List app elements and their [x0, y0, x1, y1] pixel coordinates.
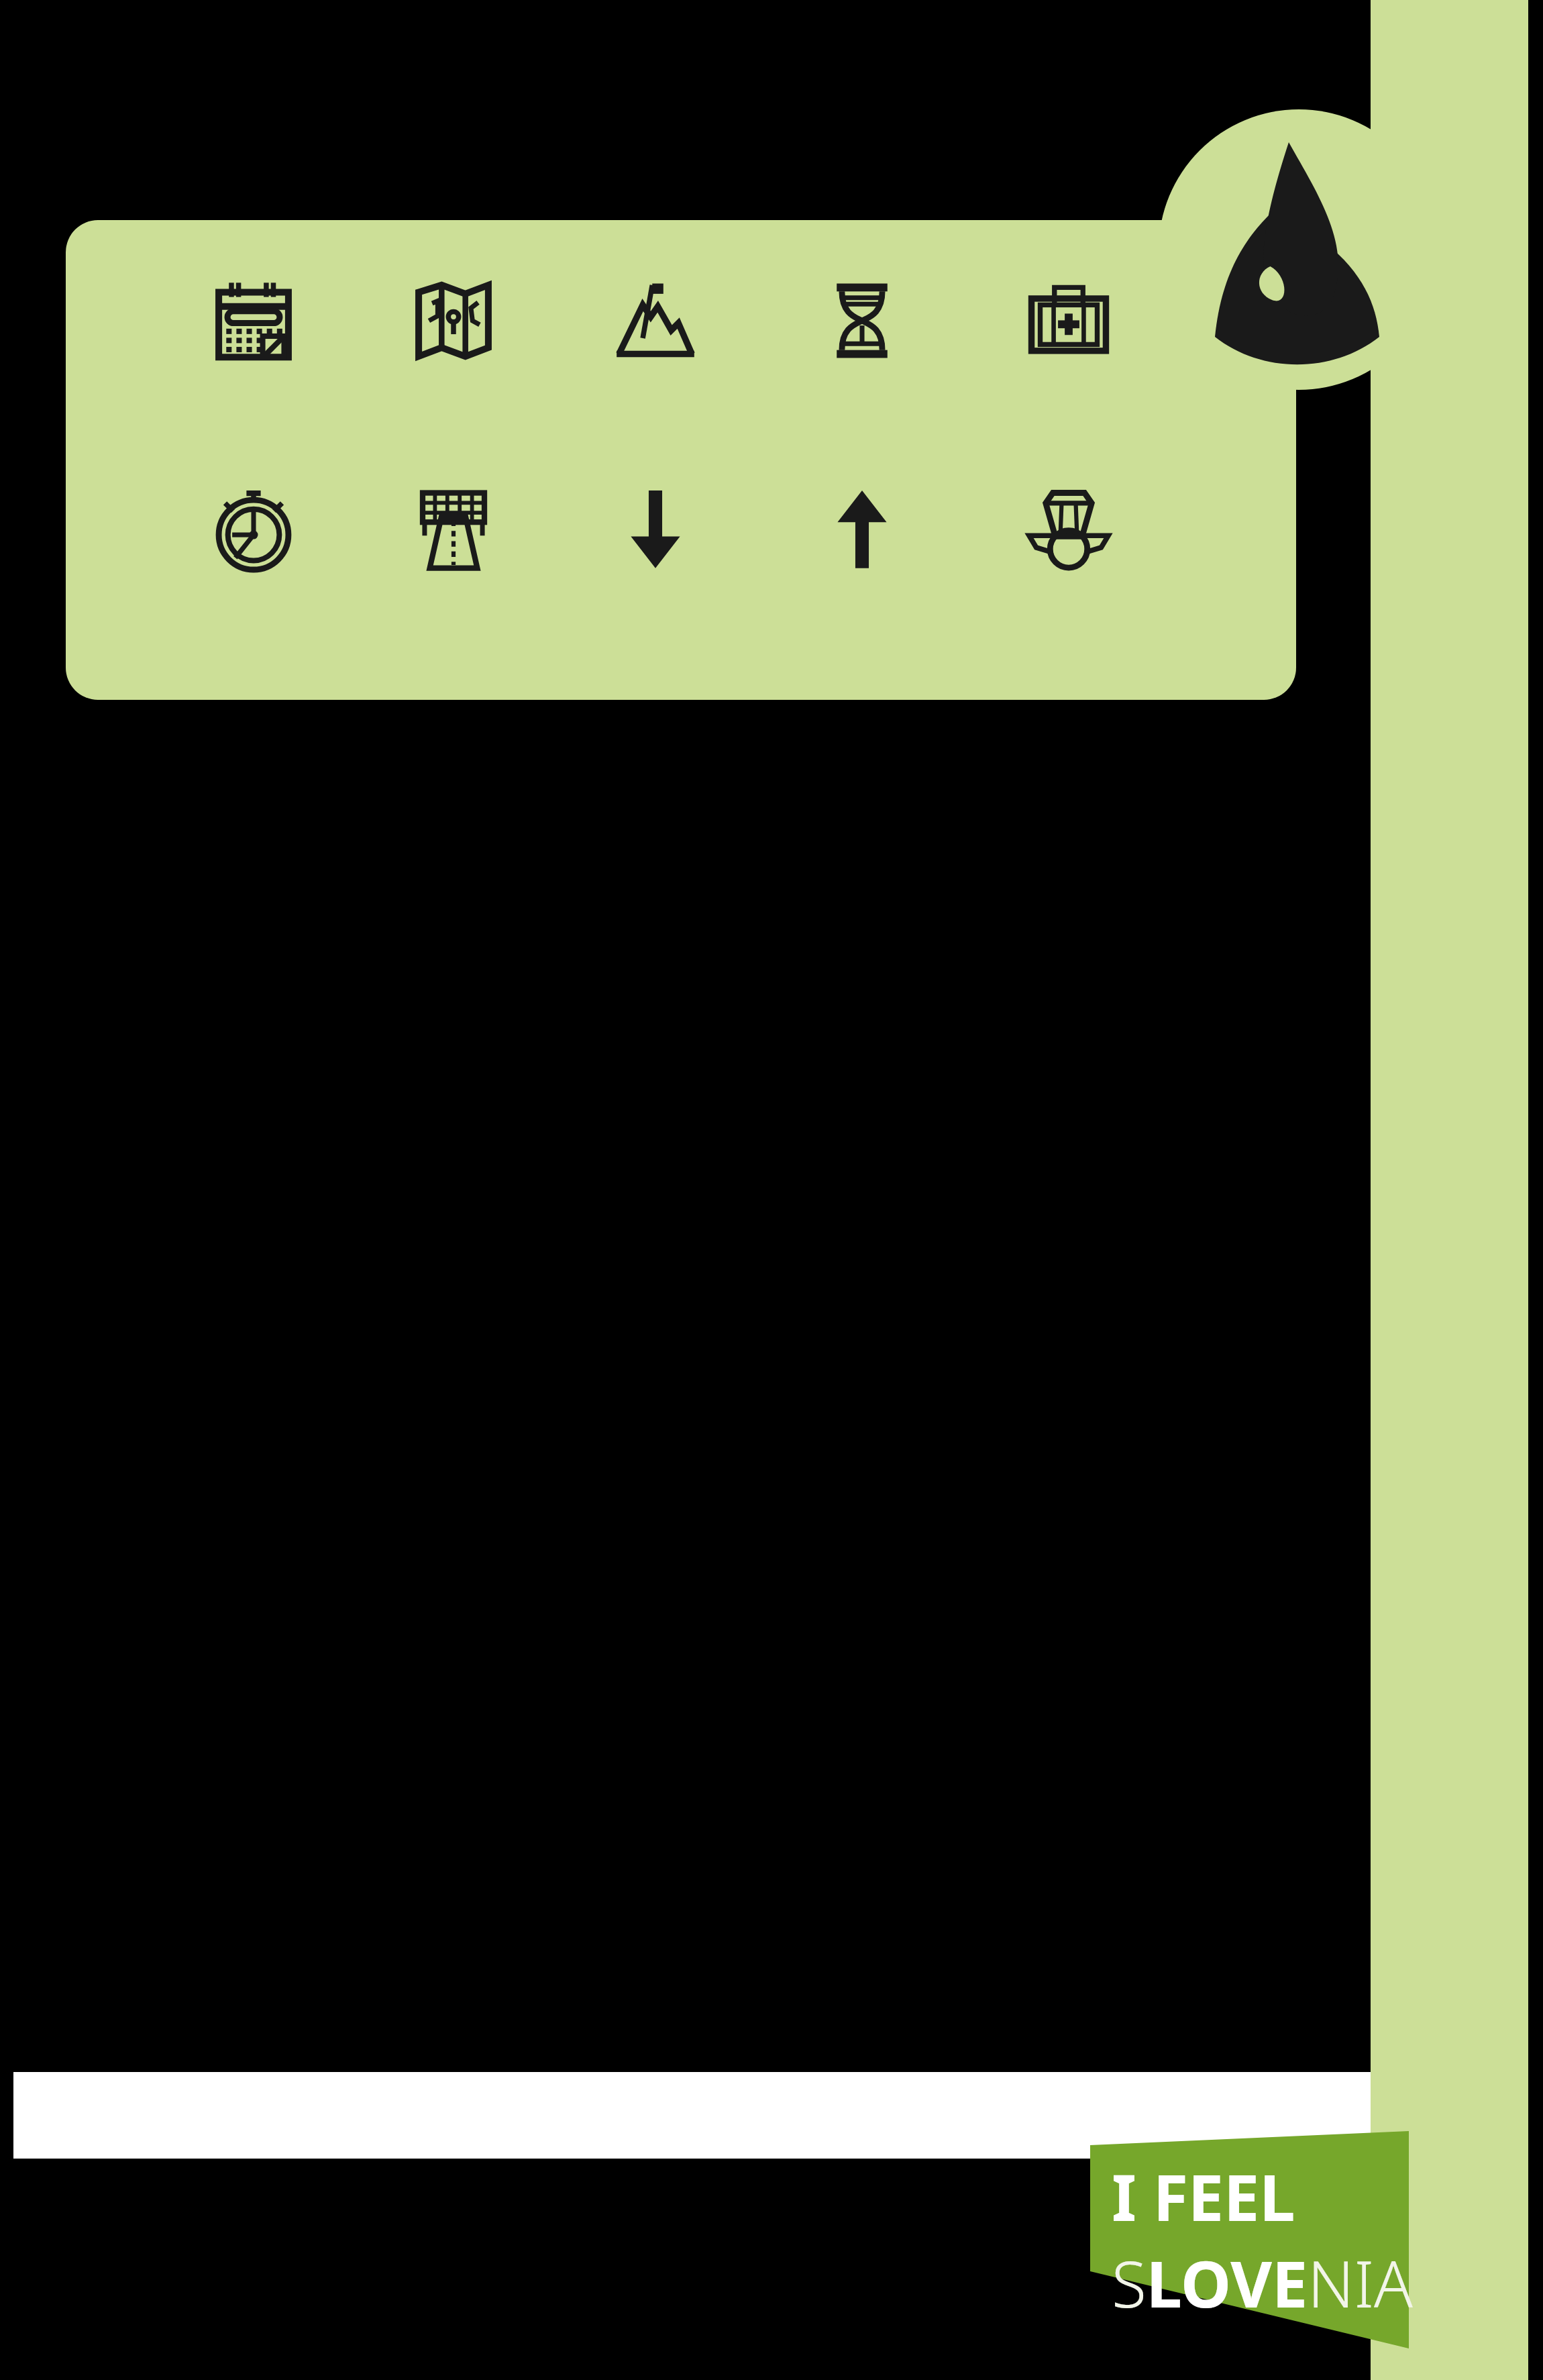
- button[interactable]: I Feel Slovenia: [1112, 2153, 1413, 2326]
- button[interactable]: Duration: [808, 267, 916, 374]
- button[interactable]: Date: [200, 267, 307, 374]
- button[interactable]: Route: [400, 476, 507, 584]
- button[interactable]: Award: [1015, 476, 1122, 584]
- button[interactable]: Map: [400, 267, 507, 374]
- button[interactable]: First aid: [1015, 267, 1122, 374]
- button[interactable]: Ascent: [808, 476, 916, 584]
- button[interactable]: Timing: [200, 476, 307, 584]
- staticText: SLOVENIA: [1112, 2239, 1413, 2326]
- staticText: I FEEL: [1112, 2153, 1295, 2239]
- button[interactable]: Summit: [602, 267, 709, 374]
- button[interactable]: Descent: [602, 476, 709, 584]
